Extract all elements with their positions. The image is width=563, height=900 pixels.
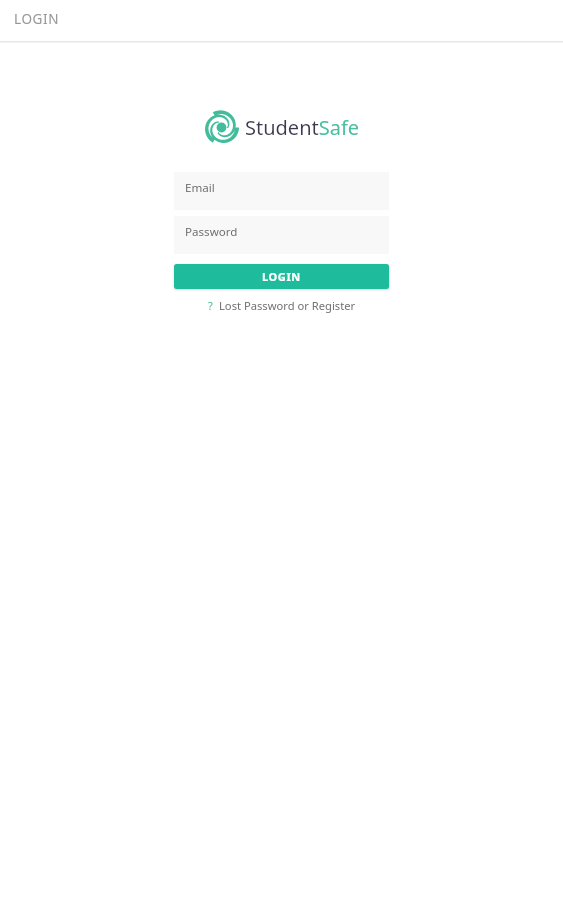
staticText: StudentSafe — [245, 114, 360, 141]
staticText: ? — [208, 298, 213, 313]
button[interactable]: Email — [174, 172, 389, 210]
staticText: LOGIN — [14, 10, 60, 28]
button[interactable]: Password — [174, 216, 389, 254]
staticText: Lost Password or Register — [219, 298, 356, 313]
button[interactable]: ? — [208, 298, 356, 313]
staticText: LOGIN — [262, 269, 301, 284]
button[interactable]: LOGIN — [174, 264, 389, 289]
other: StudentSafe — [204, 110, 360, 145]
staticText: Email — [185, 180, 215, 196]
staticText: Password — [185, 224, 238, 240]
